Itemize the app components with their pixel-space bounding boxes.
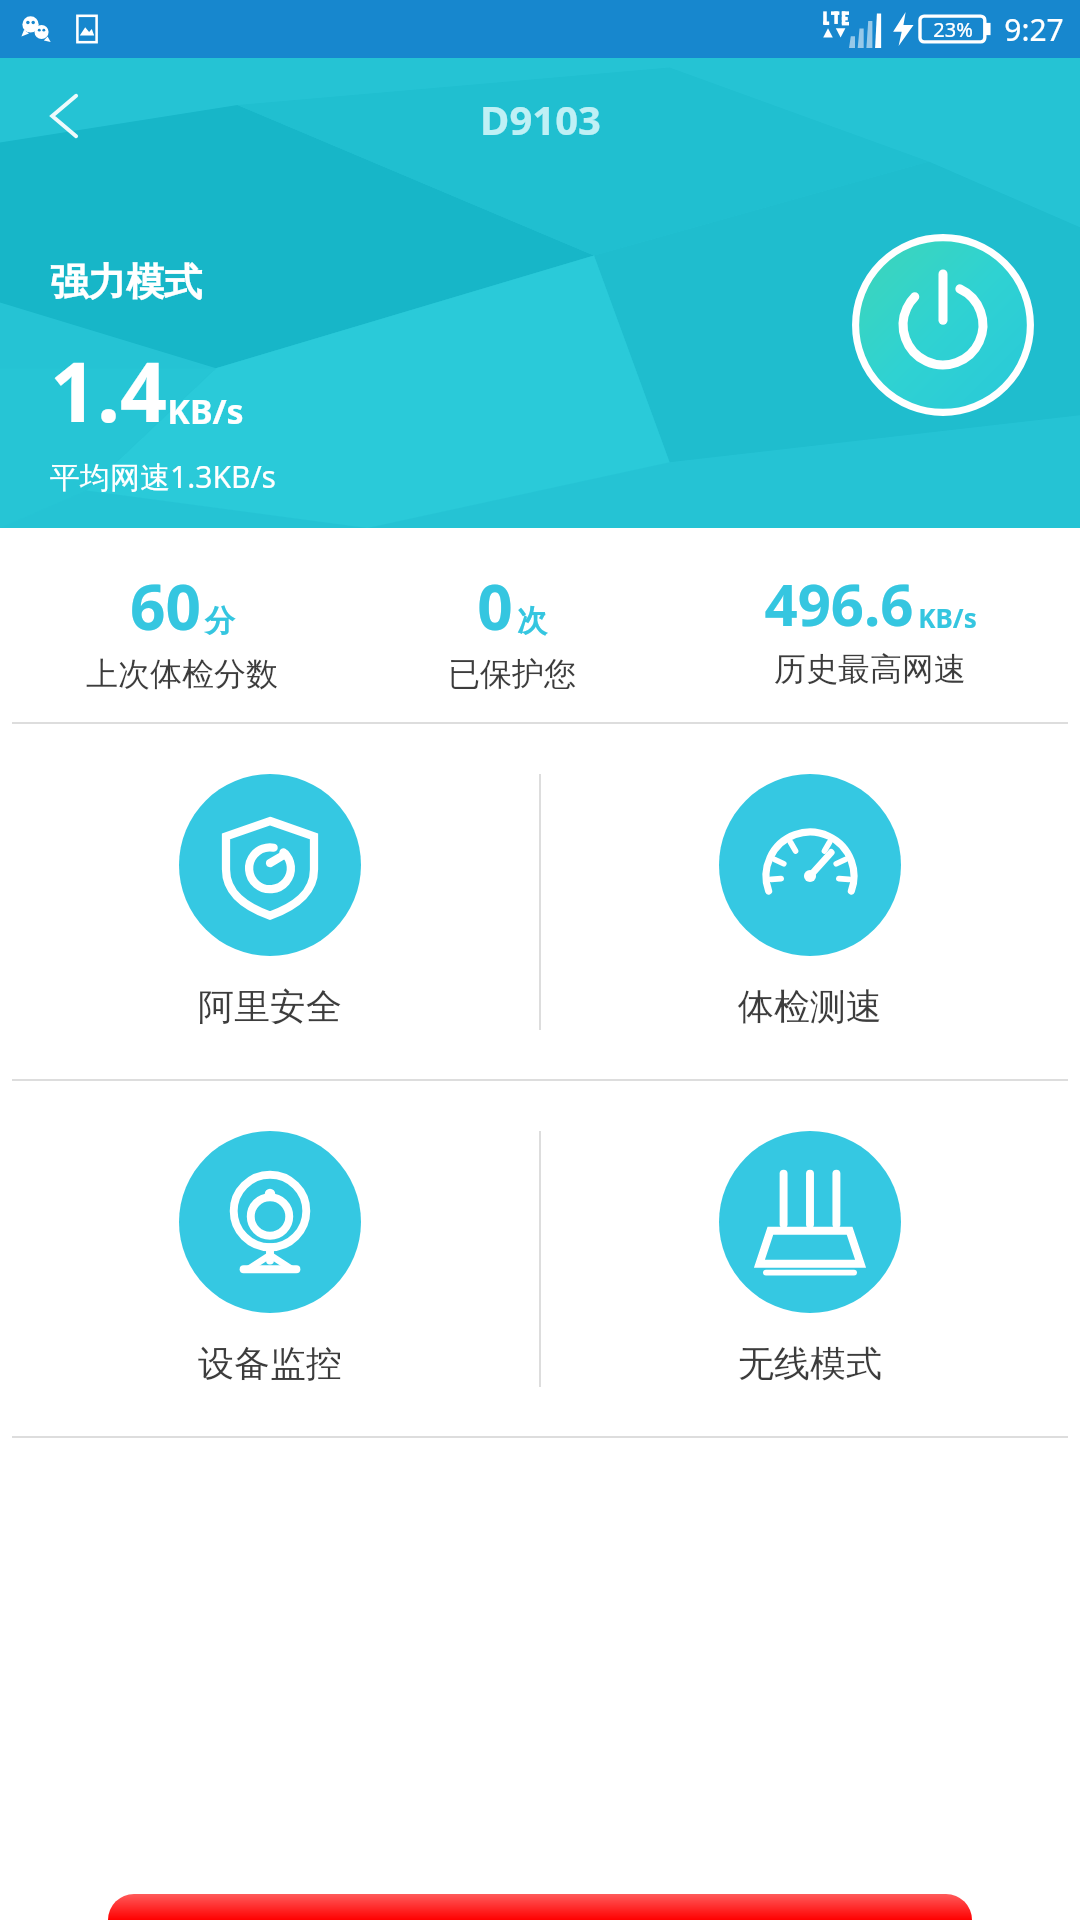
button[interactable]: Power toggle xyxy=(848,230,1038,420)
staticText: 23% xyxy=(933,16,973,43)
staticText: 已保护您 xyxy=(448,654,576,694)
staticText: D9103 xyxy=(480,92,601,146)
staticText: 0 xyxy=(477,564,513,648)
staticText: 分 xyxy=(205,602,235,640)
staticText: 强力模式 xyxy=(50,258,202,306)
staticText: 496.6 xyxy=(764,564,914,643)
staticText: KB/s xyxy=(918,600,977,635)
button[interactable]: 体检测速 xyxy=(540,724,1080,1079)
staticText: 无线模式 xyxy=(738,1341,882,1386)
button[interactable]: Bottom action xyxy=(108,1894,972,1920)
staticText: 历史最高网速 xyxy=(774,649,966,689)
staticText: 平均网速1.3KB/s xyxy=(50,456,276,497)
button[interactable]: Back xyxy=(18,68,114,164)
staticText: 上次体检分数 xyxy=(86,654,278,694)
staticText: 1.4 xyxy=(50,334,167,446)
button[interactable]: 60 xyxy=(0,564,364,694)
button[interactable]: 无线模式 xyxy=(540,1081,1080,1436)
staticText: 9:27 xyxy=(1004,9,1064,50)
button[interactable]: 阿里安全 xyxy=(0,724,540,1079)
staticText: 体检测速 xyxy=(738,984,882,1029)
button[interactable]: 0 xyxy=(364,564,660,694)
staticText: 设备监控 xyxy=(198,1341,342,1386)
staticText: 60 xyxy=(130,564,201,648)
button[interactable]: 设备监控 xyxy=(0,1081,540,1436)
staticText: 次 xyxy=(517,602,547,640)
button[interactable]: 496.6 xyxy=(660,564,1080,689)
staticText: 阿里安全 xyxy=(198,984,342,1029)
staticText: KB/s xyxy=(167,388,244,434)
